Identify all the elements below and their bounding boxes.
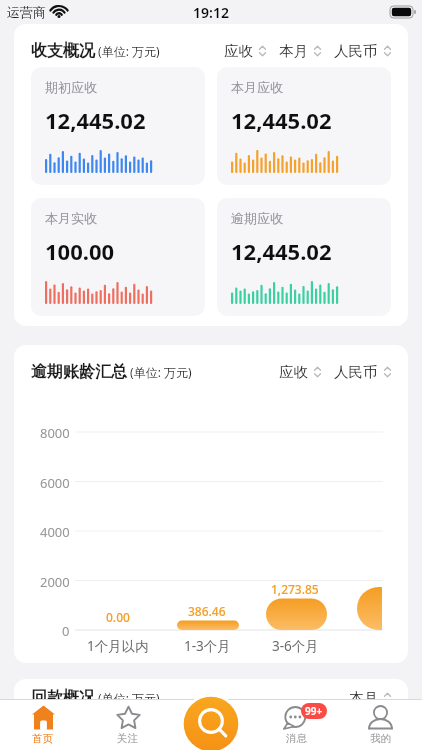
button[interactable]: 本月 — [279, 42, 321, 60]
staticText: 本月应收 — [231, 79, 283, 95]
staticText: 3-6个月 — [272, 637, 319, 655]
staticText: (单位: 万元) — [127, 364, 192, 380]
staticText: 本月 — [349, 689, 378, 707]
staticText: 386.46 — [188, 603, 226, 619]
staticText: 100.00 — [45, 236, 115, 266]
staticText: 应收 — [224, 42, 253, 60]
button[interactable]: 关注 — [85, 700, 170, 750]
button[interactable]: 期初应收 — [31, 67, 205, 185]
staticText: (单位: 万元) — [95, 690, 160, 706]
staticText: 本月实收 — [45, 210, 97, 226]
staticText: 2000 — [40, 573, 70, 591]
staticText: 回款概况 — [31, 688, 95, 708]
button[interactable]: 本月实收 — [31, 198, 205, 316]
staticText: 逾期应收 — [231, 210, 283, 226]
staticText: 关注 — [117, 732, 138, 745]
button[interactable]: 本月 — [349, 689, 391, 707]
staticText: 1个月以内 — [87, 637, 149, 655]
button[interactable]: 本月应收 — [217, 67, 391, 185]
button[interactable]: 99+ — [254, 700, 338, 750]
button[interactable]: 应收 — [224, 42, 266, 60]
staticText: 4000 — [40, 523, 70, 541]
button[interactable]: 我的 — [338, 700, 422, 750]
staticText: (单位: 万元) — [95, 43, 160, 59]
staticText: 运营商 — [7, 4, 46, 20]
staticText: 12,445.02 — [45, 105, 146, 135]
staticText: 0 — [62, 622, 70, 640]
staticText: 1,273.85 — [271, 581, 319, 597]
button[interactable] — [181, 694, 241, 750]
staticText: 人民币 — [334, 363, 378, 381]
staticText: 收支概况 — [31, 41, 95, 61]
staticText: 消息 — [286, 732, 307, 745]
staticText: 首页 — [32, 732, 53, 745]
staticText: 我的 — [370, 732, 391, 745]
staticText: 1-3个月 — [184, 637, 231, 655]
staticText: 99+ — [305, 704, 323, 718]
staticText: 8000 — [40, 424, 70, 442]
staticText: 本月 — [279, 42, 308, 60]
staticText: 19:12 — [193, 3, 229, 22]
button[interactable]: 人民币 — [334, 363, 391, 381]
button[interactable]: 应收 — [279, 363, 321, 381]
staticText: 人民币 — [334, 42, 378, 60]
button[interactable]: 人民币 — [334, 42, 391, 60]
staticText: 逾期账龄汇总 — [31, 362, 127, 382]
button[interactable]: 逾期应收 — [217, 198, 391, 316]
button[interactable]: 首页 — [0, 700, 85, 750]
staticText: 12,445.02 — [231, 105, 332, 135]
staticText: 0.00 — [106, 609, 130, 625]
staticText: 6000 — [40, 474, 70, 492]
staticText: 12,445.02 — [231, 236, 332, 266]
staticText: 应收 — [279, 363, 308, 381]
staticText: 期初应收 — [45, 79, 97, 95]
